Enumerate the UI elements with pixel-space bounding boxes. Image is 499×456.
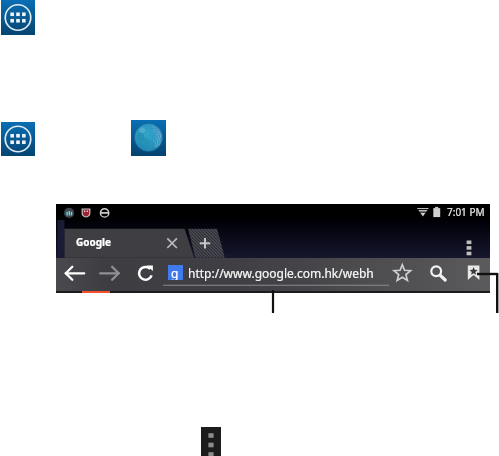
- staticText: http://www.google.com.hk/webh: [188, 265, 374, 281]
- button[interactable]: Browser: [131, 120, 166, 156]
- button[interactable]: Menu: [459, 240, 479, 258]
- button[interactable]: More options: [201, 427, 221, 456]
- button[interactable]: Apps: [1, 122, 35, 156]
- button[interactable]: Bookmarks: [461, 261, 485, 285]
- button[interactable]: Apps: [1, 0, 35, 35]
- button[interactable]: Bookmark this page: [390, 261, 414, 285]
- staticText: Google: [76, 235, 112, 249]
- staticText: g: [171, 265, 179, 280]
- button[interactable]: Close tab: [160, 231, 184, 255]
- button[interactable]: New tab: [193, 231, 217, 255]
- staticText: 7:01 PM: [447, 205, 485, 219]
- button[interactable]: Search: [424, 261, 448, 285]
